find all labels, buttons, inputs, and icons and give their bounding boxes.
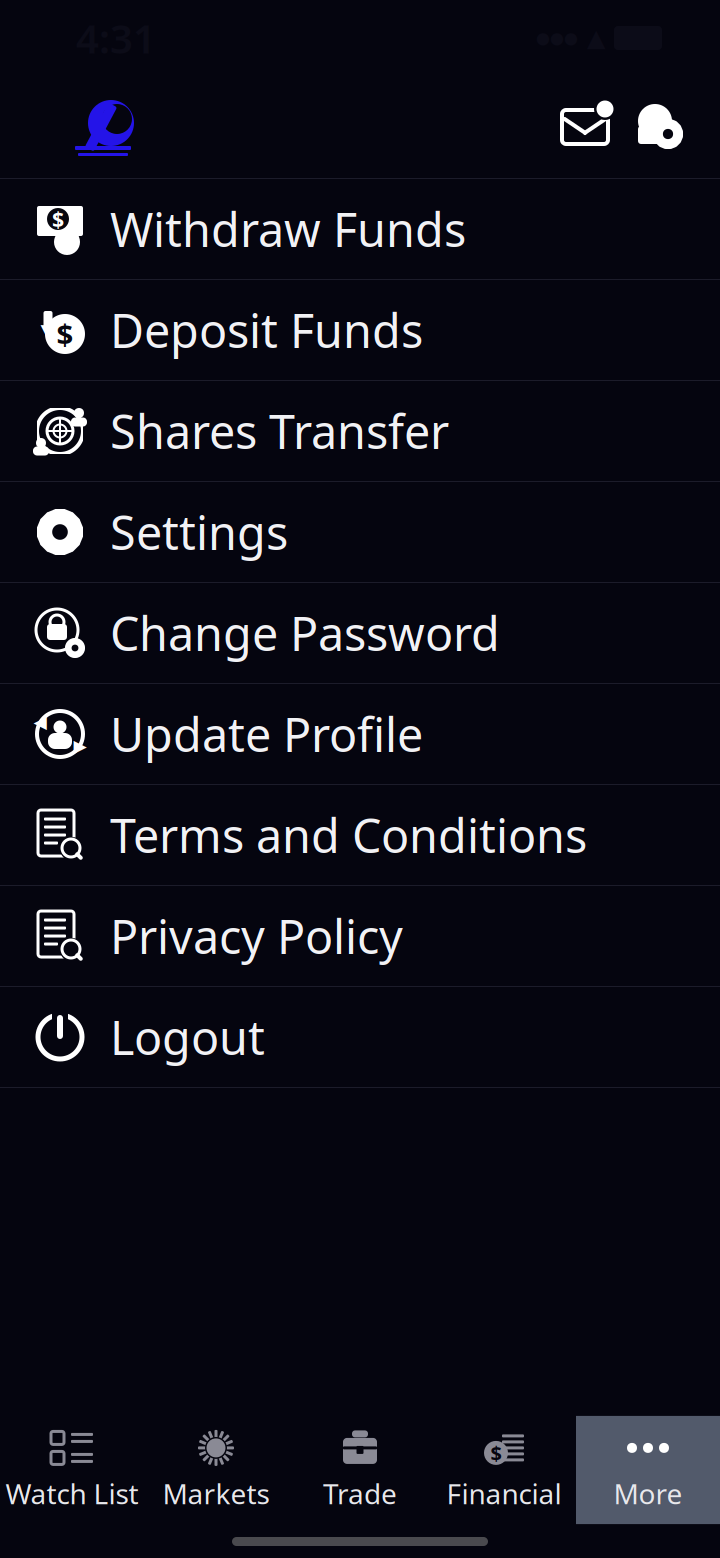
staticText: Financial	[446, 1475, 561, 1512]
button[interactable]: $	[0, 179, 720, 280]
staticText: ▲	[587, 24, 605, 52]
staticText: Watch List	[5, 1475, 138, 1512]
staticText: Trade	[323, 1475, 397, 1512]
button[interactable]: Markets	[144, 1416, 288, 1524]
button[interactable]: $	[432, 1416, 576, 1524]
staticText: 4:31	[76, 11, 156, 64]
staticText: Settings	[110, 501, 288, 563]
button[interactable]: Privacy Policy	[0, 886, 720, 987]
button[interactable]: Trade	[288, 1416, 432, 1524]
staticText: ▶	[73, 736, 86, 756]
staticText: More	[613, 1475, 682, 1512]
button[interactable]: Notification Settings	[622, 96, 696, 158]
button[interactable]: Messages	[548, 96, 622, 158]
staticText: ▼	[40, 320, 55, 342]
button[interactable]: $	[0, 280, 720, 381]
staticText: Shares Transfer	[110, 400, 449, 462]
staticText: Terms and Conditions	[110, 804, 587, 866]
staticText: Markets	[162, 1475, 269, 1512]
staticText: $	[490, 1440, 501, 1466]
staticText: Change Password	[110, 602, 500, 664]
button[interactable]: Watch List	[0, 1416, 144, 1524]
button[interactable]: Settings	[0, 482, 720, 583]
staticText: Deposit Funds	[110, 299, 423, 361]
button[interactable]: ▶	[0, 684, 720, 785]
staticText: Logout	[110, 1006, 265, 1068]
staticText: Update Profile	[110, 703, 423, 765]
staticText: $	[56, 314, 73, 353]
staticText: $	[52, 205, 64, 233]
button[interactable]: Shares Transfer	[0, 381, 720, 482]
staticText: ●●●	[536, 29, 578, 47]
button[interactable]: Terms and Conditions	[0, 785, 720, 886]
button[interactable]: More	[576, 1416, 720, 1524]
button[interactable]: Logout	[0, 987, 720, 1088]
button[interactable]: Change Password	[0, 583, 720, 684]
staticText: Privacy Policy	[110, 905, 403, 967]
staticText: Withdraw Funds	[110, 198, 466, 260]
staticText: ◀	[33, 712, 46, 732]
